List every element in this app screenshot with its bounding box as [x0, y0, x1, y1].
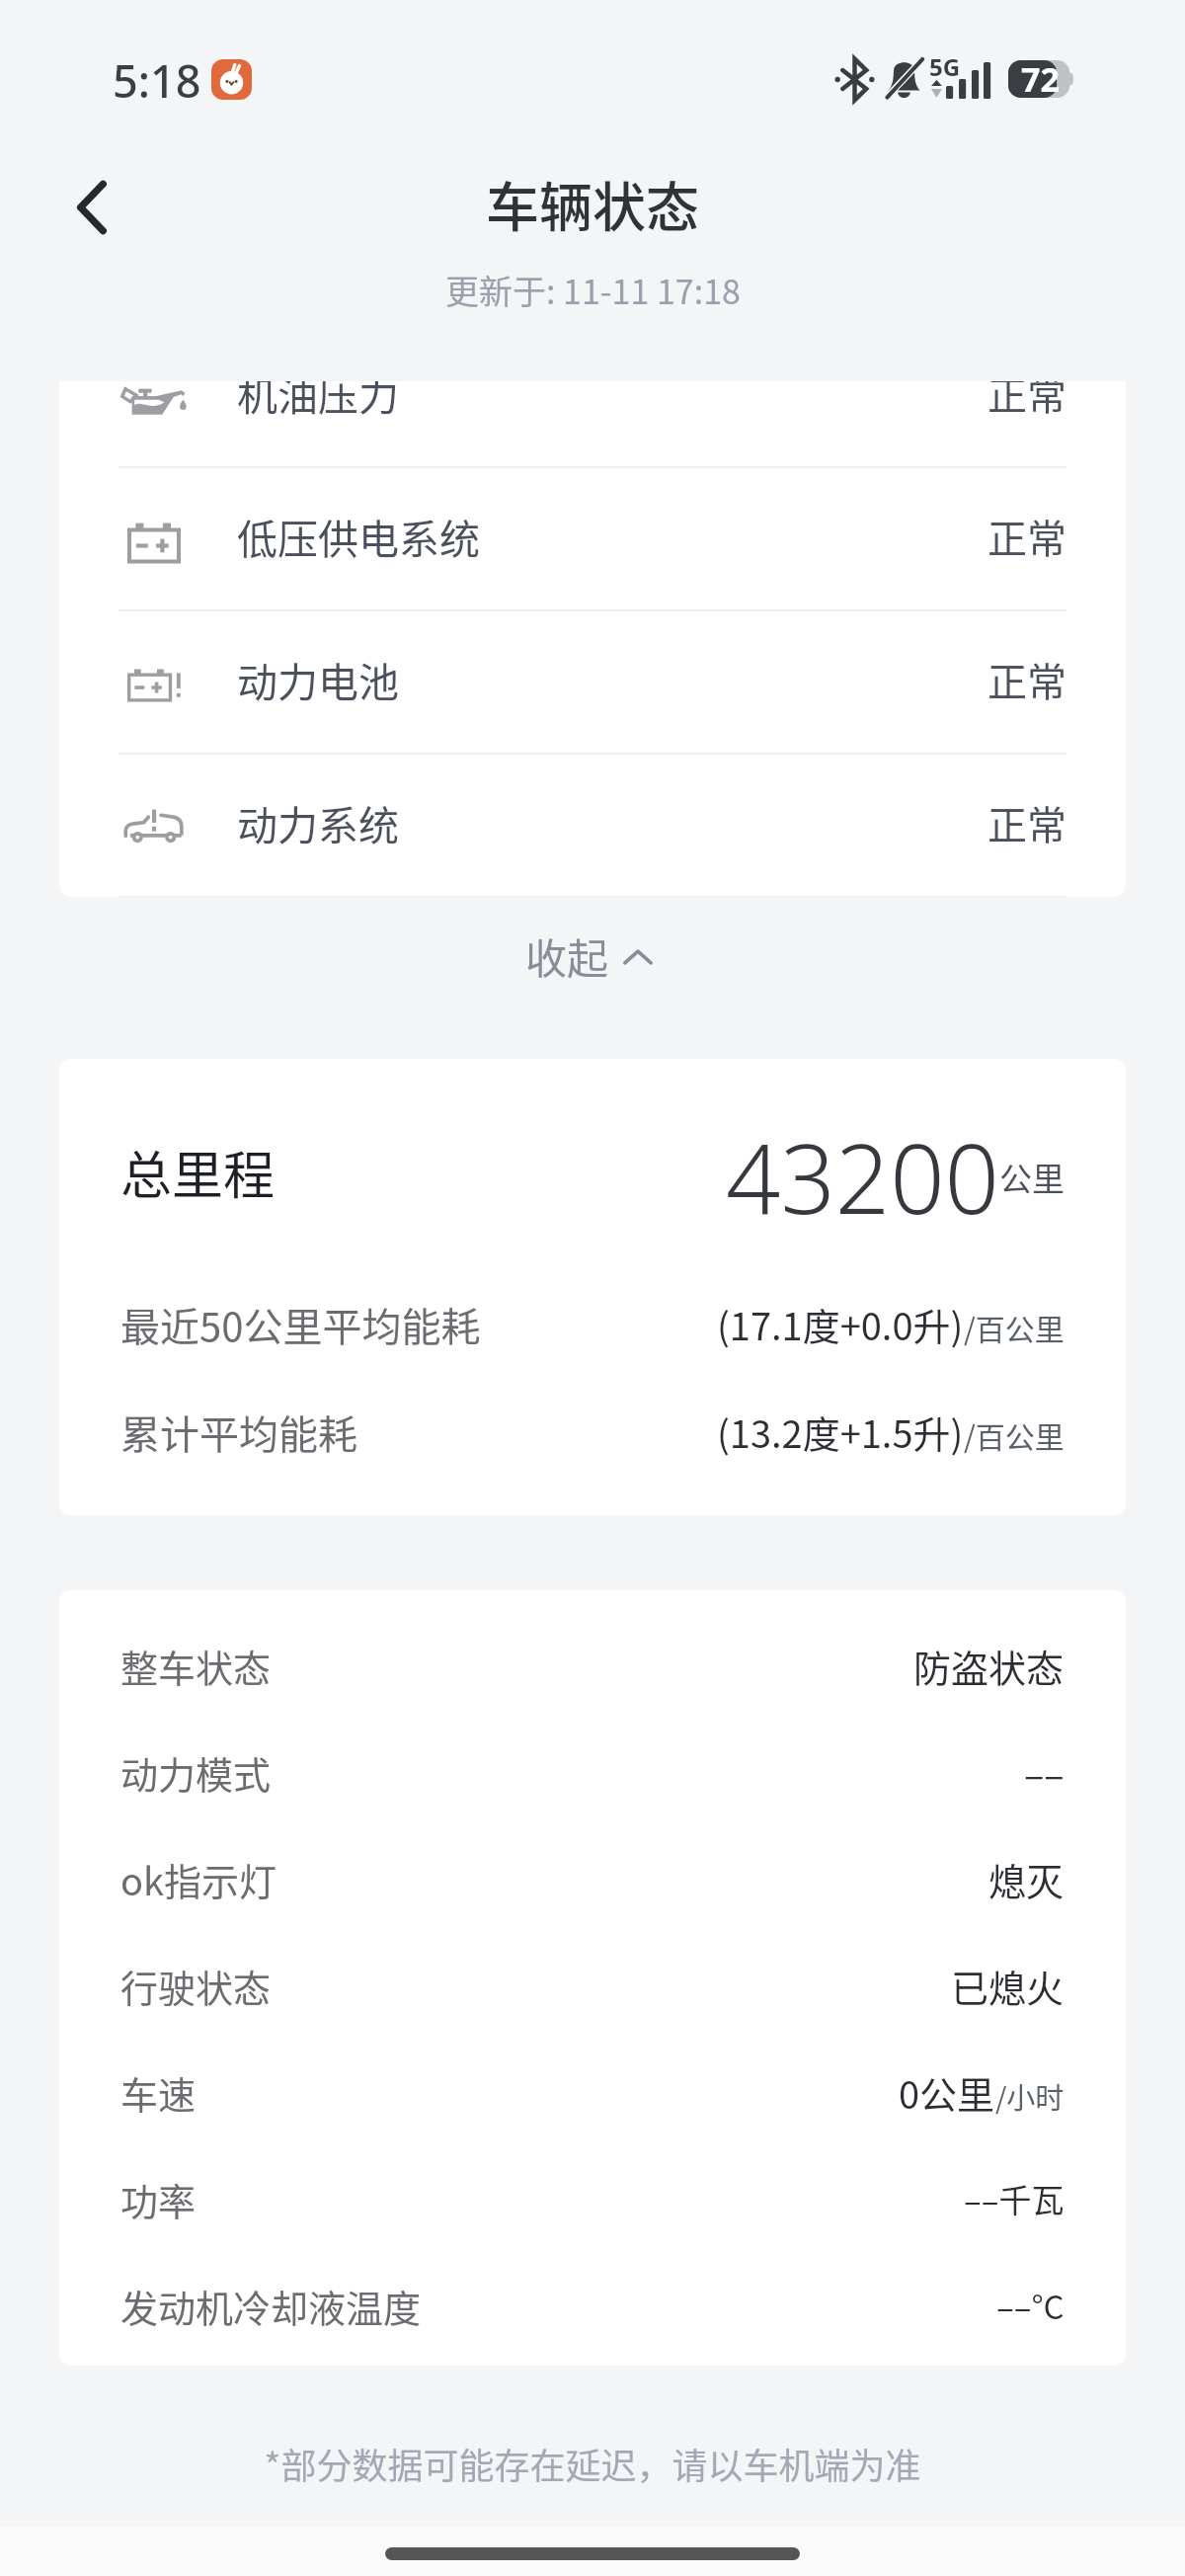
- staticText: 43200: [726, 1111, 999, 1242]
- staticText: ––: [1024, 1745, 1065, 1800]
- staticText: 动力系统: [237, 793, 399, 851]
- button[interactable]: 功率: [59, 2145, 1126, 2252]
- staticText: *部分数据可能存在延迟，请以车机端为准: [0, 2438, 1185, 2489]
- staticText: 防盗状态: [913, 1639, 1065, 1693]
- staticText: /小时: [995, 2075, 1065, 2117]
- staticText: ––°C: [996, 2282, 1065, 2329]
- staticText: ok指示灯: [120, 1852, 277, 1906]
- staticText: 正常: [987, 794, 1066, 851]
- button[interactable]: 发动机冷却液温度: [59, 2252, 1126, 2359]
- button[interactable]: 累计平均能耗: [59, 1390, 1126, 1474]
- staticText: 车辆状态: [486, 165, 699, 242]
- staticText: 0公里: [899, 2065, 995, 2120]
- staticText: 累计平均能耗: [120, 1404, 357, 1461]
- button[interactable]: 车速: [59, 2039, 1126, 2145]
- staticText: /百公里: [964, 1306, 1065, 1348]
- staticText: 熄灭: [988, 1852, 1065, 1906]
- staticText: 最近50公里平均能耗: [120, 1296, 481, 1353]
- staticText: 5G: [929, 50, 961, 83]
- staticText: 功率: [120, 2172, 197, 2226]
- staticText: (17.1度+0.0升): [717, 1297, 964, 1351]
- staticText: 公里: [999, 1154, 1065, 1201]
- staticText: 整车状态: [120, 1639, 272, 1693]
- button[interactable]: 最近50公里平均能耗: [59, 1282, 1126, 1366]
- staticText: 机油压力: [237, 381, 399, 422]
- button[interactable]: 动力电池: [59, 611, 1126, 753]
- button[interactable]: 行驶状态: [59, 1932, 1126, 2039]
- staticText: 正常: [987, 381, 1066, 422]
- button[interactable]: 机油压力: [59, 381, 1126, 466]
- staticText: 更新于: 11-11 17:18: [445, 266, 741, 314]
- staticText: /百公里: [964, 1413, 1065, 1456]
- button[interactable]: 整车状态: [59, 1612, 1126, 1719]
- staticText: 行驶状态: [120, 1959, 272, 2013]
- staticText: 正常: [987, 508, 1066, 565]
- staticText: 车速: [120, 2065, 197, 2120]
- staticText: 动力模式: [120, 1745, 272, 1800]
- button[interactable]: 低压供电系统: [59, 468, 1126, 609]
- staticText: 正常: [987, 651, 1066, 708]
- button[interactable]: 动力系统: [59, 755, 1126, 896]
- staticText: 总里程: [120, 1135, 276, 1209]
- button[interactable]: 动力模式: [59, 1719, 1126, 1825]
- staticText: 动力电池: [237, 650, 399, 708]
- staticText: 发动机冷却液温度: [120, 2279, 422, 2333]
- button[interactable]: ok指示灯: [59, 1825, 1126, 1932]
- button[interactable]: 收起: [0, 897, 1185, 1013]
- staticText: 低压供电系统: [237, 507, 480, 565]
- staticText: (13.2度+1.5升): [717, 1405, 964, 1459]
- staticText: 已熄火: [951, 1959, 1065, 2013]
- staticText: 5:18: [113, 50, 201, 111]
- staticText: ––千瓦: [964, 2175, 1065, 2222]
- staticText: 收起: [525, 926, 609, 986]
- staticText: 72: [1021, 56, 1060, 102]
- button[interactable]: 返回: [23, 138, 161, 277]
